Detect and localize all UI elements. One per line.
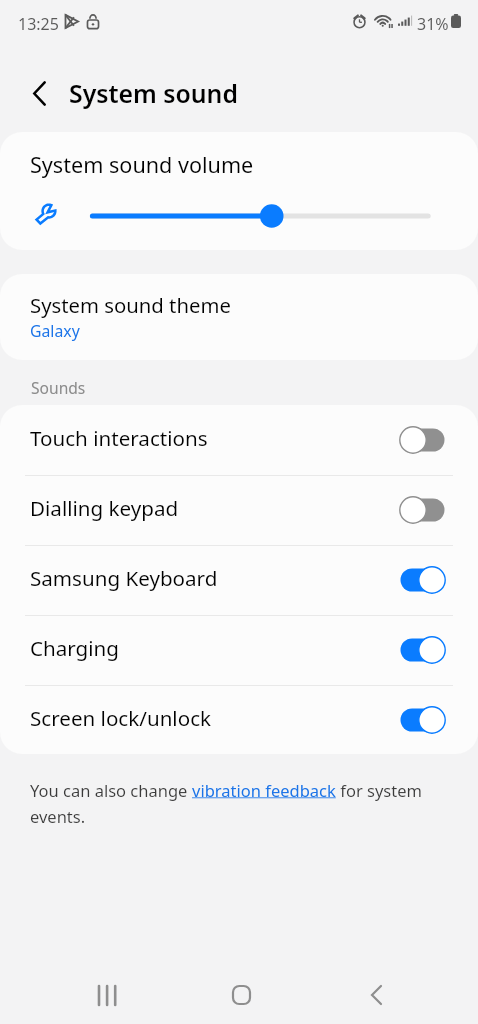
staticText: Galaxy bbox=[30, 320, 80, 342]
button[interactable]: System sound theme bbox=[0, 274, 478, 360]
button[interactable]: Screen lock/unlock bbox=[0, 685, 478, 754]
staticText: Screen lock/unlock bbox=[30, 704, 212, 732]
button[interactable]: Dialling keypad bbox=[0, 475, 478, 545]
button[interactable]: Home bbox=[201, 955, 281, 1024]
staticText: Sounds bbox=[31, 377, 86, 398]
staticText: System sound bbox=[69, 76, 238, 110]
staticText: events. bbox=[30, 805, 86, 827]
button[interactable]: Recent apps bbox=[67, 955, 147, 1024]
button[interactable]: Charging bbox=[0, 615, 478, 685]
button[interactable]: Navigate up bbox=[16, 70, 62, 116]
staticText: Touch interactions bbox=[30, 424, 208, 452]
staticText: Charging bbox=[30, 634, 119, 662]
staticText: Samsung Keyboard bbox=[30, 564, 218, 592]
button[interactable]: Touch interactions bbox=[0, 405, 478, 475]
staticText: System sound theme bbox=[30, 291, 231, 319]
staticText: You can also change bbox=[30, 779, 192, 801]
staticText: 13:25 bbox=[18, 13, 59, 35]
staticText: for system bbox=[336, 779, 422, 801]
staticText: Dialling keypad bbox=[30, 494, 179, 522]
button[interactable]: Samsung Keyboard bbox=[0, 545, 478, 615]
button[interactable]: System sound volume slider bbox=[80, 204, 440, 228]
staticText: System sound volume bbox=[30, 150, 254, 179]
button[interactable]: Back bbox=[336, 955, 416, 1024]
staticText: 31% bbox=[417, 13, 449, 35]
button[interactable]: vibration feedback bbox=[192, 779, 336, 801]
